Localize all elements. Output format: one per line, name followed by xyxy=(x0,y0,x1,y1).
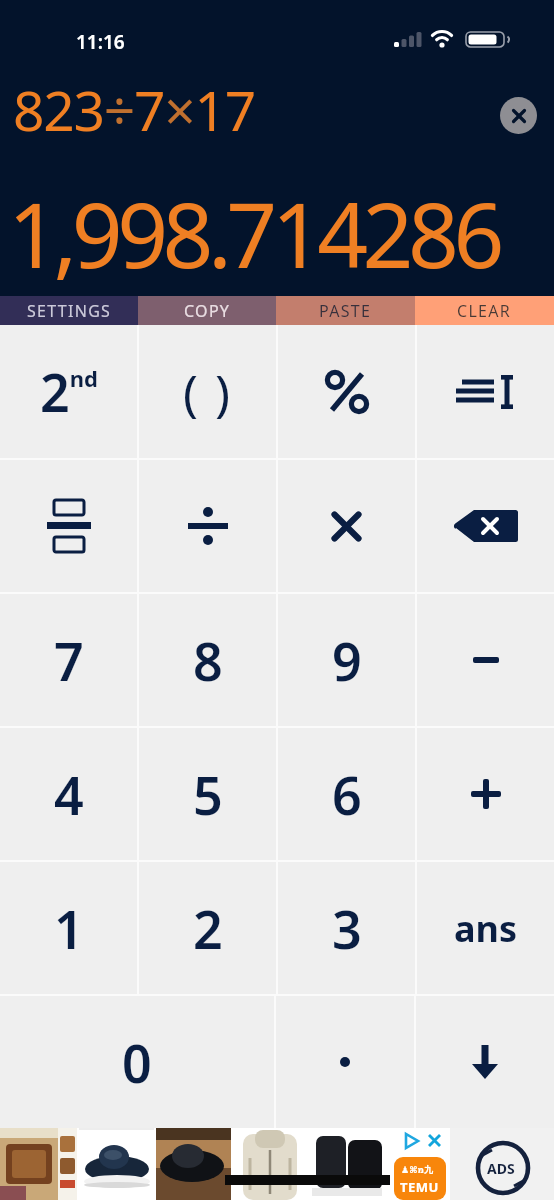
button[interactable]: 4 xyxy=(0,728,137,860)
button[interactable] xyxy=(278,460,415,592)
button[interactable]: 0 xyxy=(0,996,274,1128)
button[interactable] xyxy=(417,325,554,458)
staticText: ( ) xyxy=(183,358,232,426)
button[interactable]: SETTINGS xyxy=(0,296,138,325)
button[interactable]: PASTE xyxy=(276,296,415,325)
button[interactable]: COPY xyxy=(138,296,276,325)
button[interactable]: 1 xyxy=(0,862,137,994)
button[interactable]: 3 xyxy=(278,862,415,994)
staticText: 2 xyxy=(193,893,223,964)
button[interactable] xyxy=(0,460,137,592)
button[interactable]: ans xyxy=(417,862,554,994)
staticText: 6 xyxy=(332,759,362,830)
button[interactable]: ( ) xyxy=(139,325,276,458)
button[interactable]: CLEAR xyxy=(415,296,554,325)
button[interactable] xyxy=(416,996,554,1128)
button[interactable] xyxy=(139,460,276,592)
staticText: 7 xyxy=(54,625,84,696)
staticText: 823÷7×17 xyxy=(13,72,256,147)
staticText: COPY xyxy=(184,300,231,322)
staticText: ♟⌘מ九 xyxy=(401,1164,433,1175)
button[interactable]: 9 xyxy=(278,594,415,726)
button[interactable] xyxy=(276,996,414,1128)
button[interactable]: 2nd xyxy=(0,325,137,458)
staticText: 5 xyxy=(193,759,223,830)
staticText: CLEAR xyxy=(457,300,512,322)
button[interactable] xyxy=(417,594,554,726)
staticText: 1,998.714286 xyxy=(8,173,499,294)
staticText: 11:16 xyxy=(76,29,125,55)
staticText: ADS xyxy=(487,1159,515,1178)
button[interactable] xyxy=(278,325,415,458)
button[interactable] xyxy=(500,97,537,134)
button[interactable]: 2 xyxy=(139,862,276,994)
button[interactable]: 6 xyxy=(278,728,415,860)
staticText: 9 xyxy=(332,625,362,696)
button[interactable]: 5 xyxy=(139,728,276,860)
button[interactable]: 7 xyxy=(0,594,137,726)
staticText: 1 xyxy=(54,893,84,964)
button[interactable]: 8 xyxy=(139,594,276,726)
staticText: TEMU xyxy=(400,1178,439,1196)
staticText: 3 xyxy=(332,893,362,964)
staticText: 0 xyxy=(122,1027,152,1098)
button[interactable]: ♟⌘מ九 xyxy=(0,1128,554,1200)
button[interactable] xyxy=(417,728,554,860)
button[interactable] xyxy=(417,460,554,592)
staticText: 4 xyxy=(54,759,84,830)
staticText: 8 xyxy=(193,625,223,696)
staticText: ans xyxy=(454,904,518,953)
staticText: PASTE xyxy=(319,300,372,322)
staticText: 2nd xyxy=(40,356,98,427)
staticText: SETTINGS xyxy=(27,300,112,322)
